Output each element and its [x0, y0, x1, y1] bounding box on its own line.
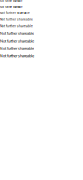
staticText: Not further shareable	[0, 46, 34, 50]
staticText: Not further shareable	[0, 31, 34, 36]
staticText: Not further shareable	[0, 39, 34, 43]
staticText: Not further shareable	[0, 6, 22, 8]
staticText: Not further shareable	[0, 18, 33, 21]
staticText: Not further shareable	[0, 24, 33, 28]
staticText: Not further shareable	[0, 53, 34, 58]
staticText: Not further shareable	[0, 0, 22, 3]
staticText: Not further shareable	[0, 11, 30, 15]
